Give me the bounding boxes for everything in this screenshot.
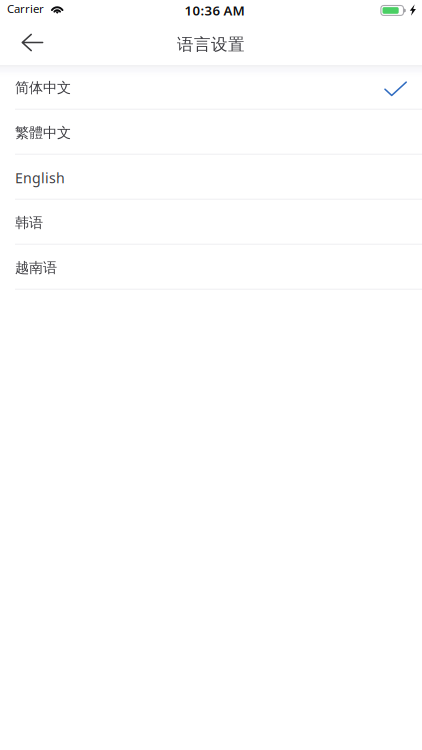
staticText: English [15, 168, 65, 187]
button[interactable]: Back [0, 22, 58, 62]
staticText: 韩语 [15, 214, 43, 232]
button[interactable]: 韩语 [0, 200, 422, 245]
staticText: 语言设置 [177, 34, 245, 55]
button[interactable]: 简体中文 [0, 65, 422, 110]
button[interactable]: 越南语 [0, 245, 422, 290]
staticText: 简体中文 [15, 79, 71, 97]
button[interactable]: 繁體中文 [0, 110, 422, 155]
staticText: 越南语 [15, 259, 57, 277]
staticText: 10:36 AM [185, 1, 245, 19]
staticText: Carrier [7, 1, 44, 16]
button[interactable]: English [0, 155, 422, 200]
staticText: 繁體中文 [15, 124, 71, 142]
